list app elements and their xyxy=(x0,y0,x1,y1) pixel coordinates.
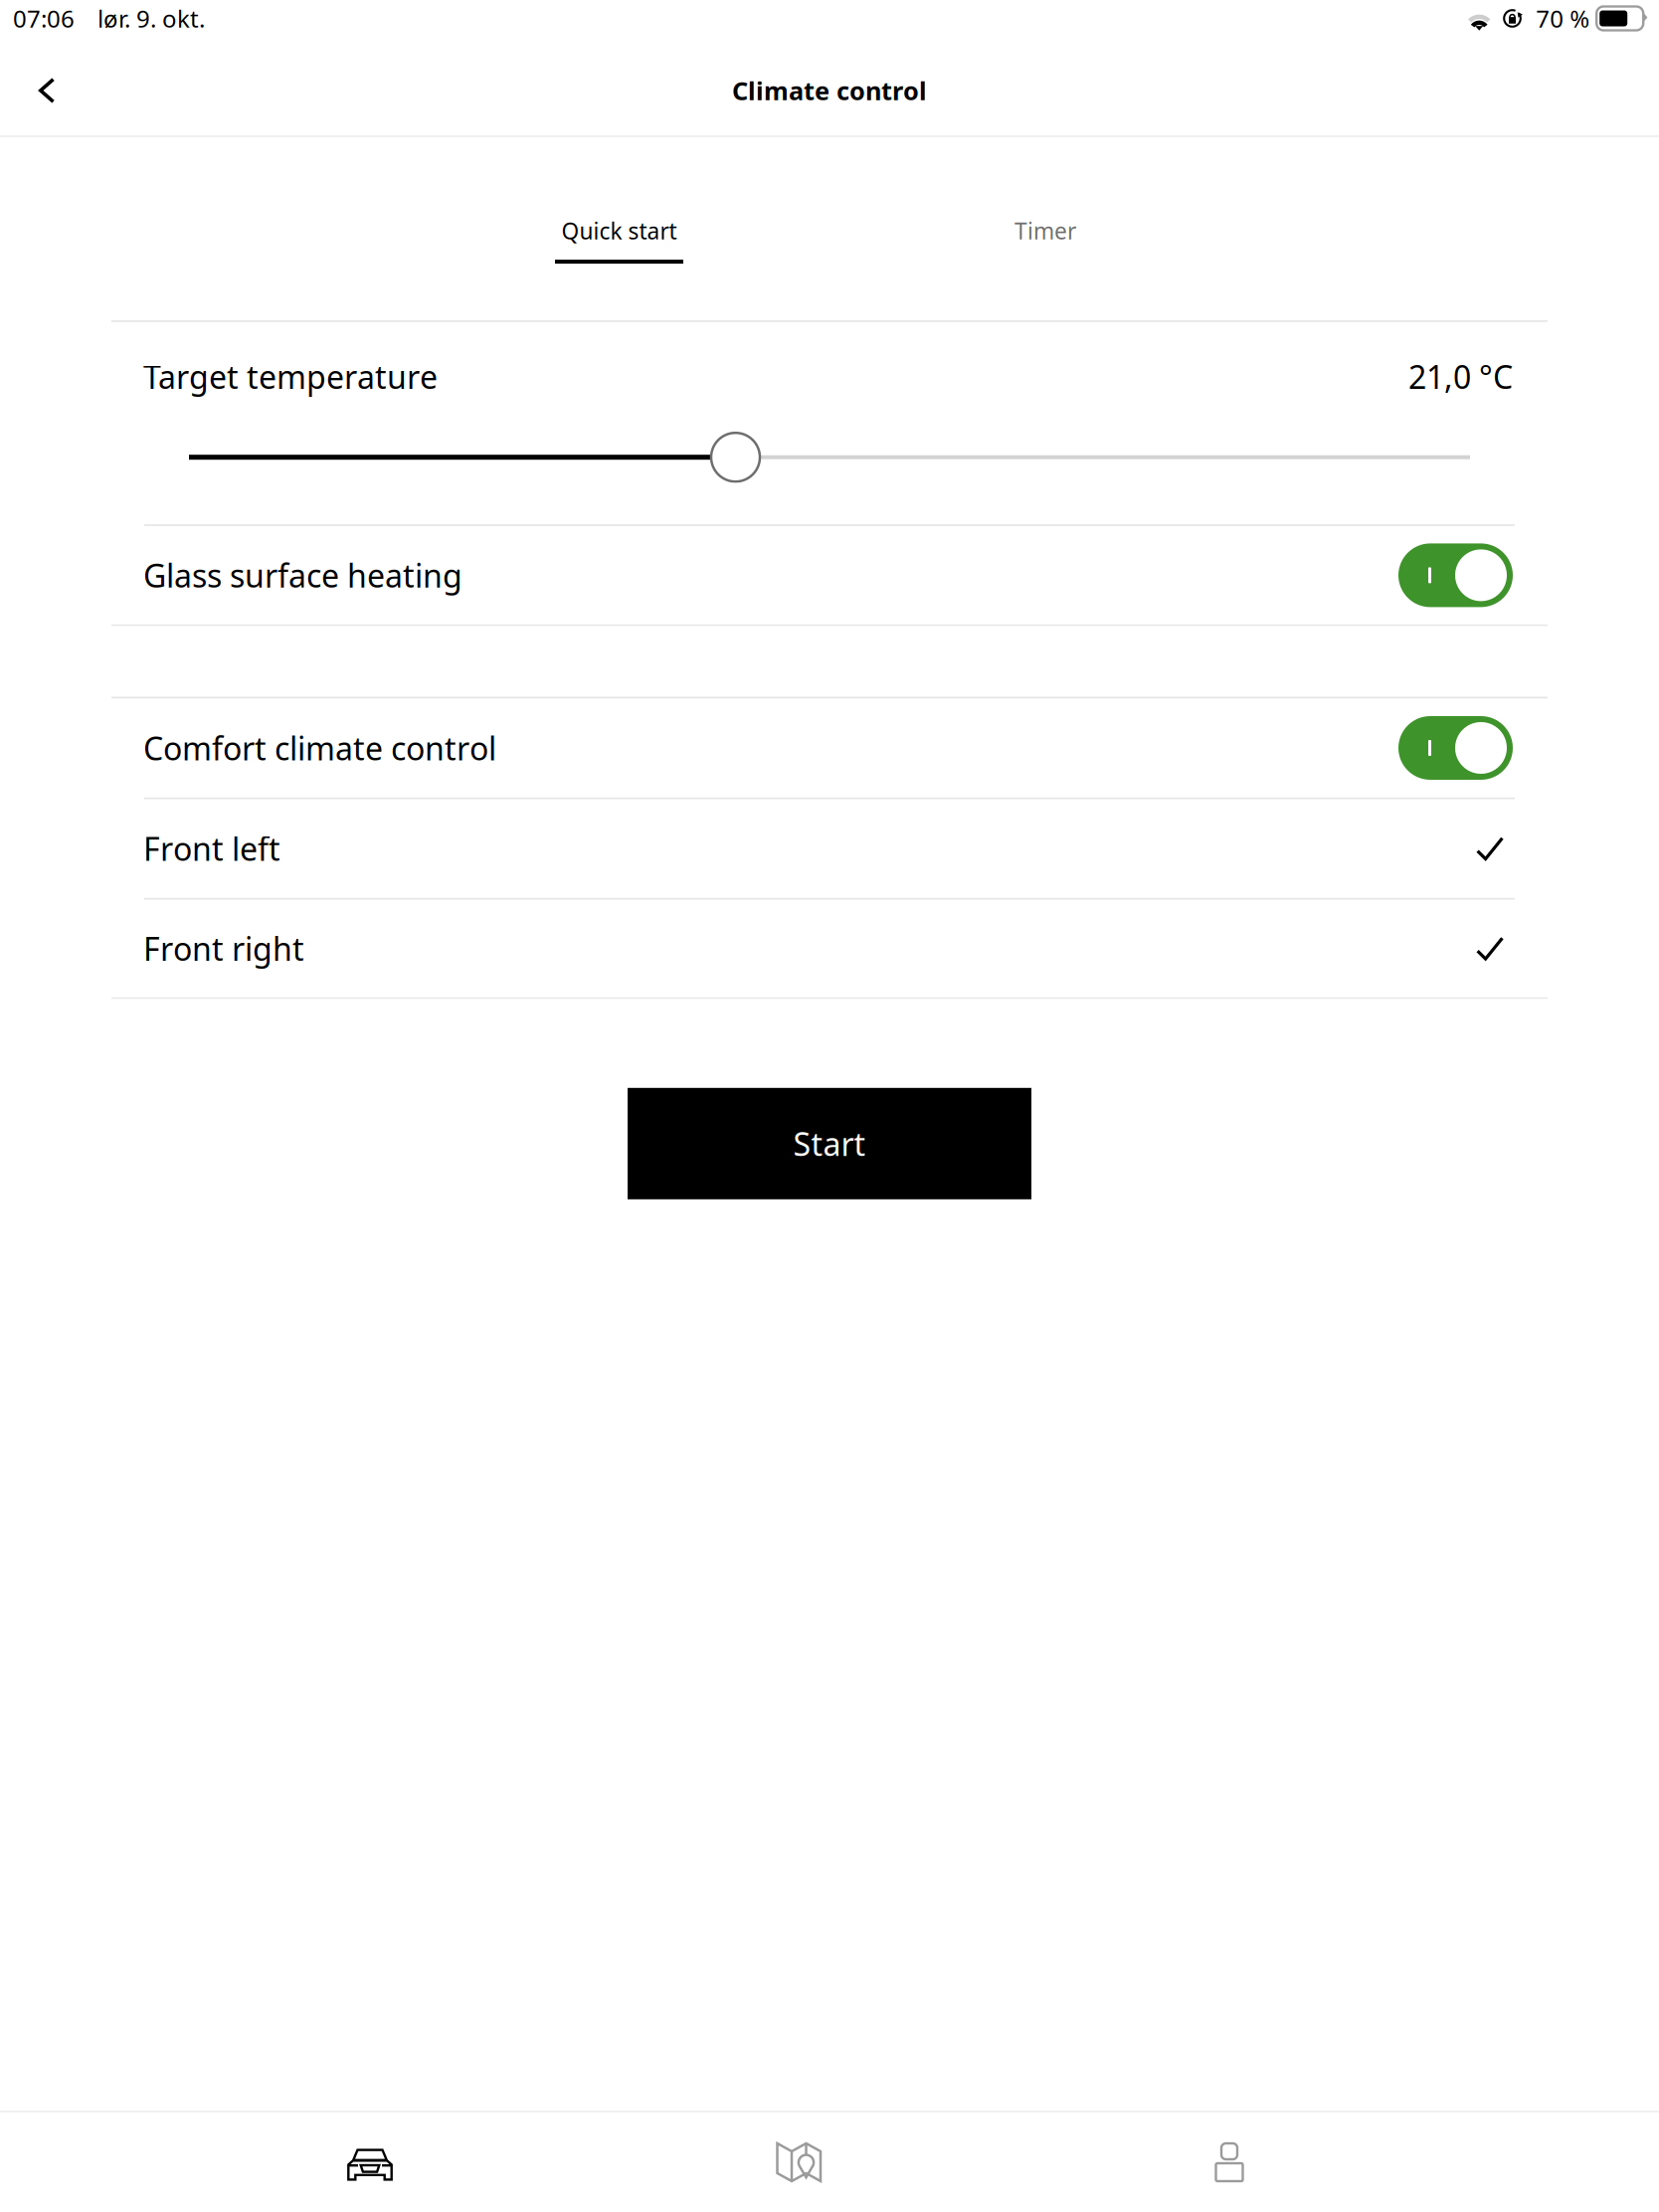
staticText: Comfort climate control xyxy=(143,727,496,769)
staticText: Target temperature xyxy=(143,356,438,398)
button[interactable]: Start xyxy=(628,1088,1031,1199)
button[interactable]: Glass surface heating xyxy=(0,526,1659,625)
staticText: 21,0 °C xyxy=(1408,356,1513,398)
staticText: 70 % xyxy=(1536,3,1590,34)
staticText: Timer xyxy=(1014,216,1076,246)
staticText: Front left xyxy=(143,827,280,870)
button[interactable]: Back xyxy=(0,49,93,132)
staticText: Glass surface heating xyxy=(143,554,462,596)
button[interactable]: Map xyxy=(584,2113,1014,2212)
staticText: Quick start xyxy=(561,216,677,246)
button[interactable]: Vehicle xyxy=(0,2113,584,2212)
staticText: Front right xyxy=(143,927,304,970)
button[interactable]: Front left xyxy=(0,799,1659,898)
button[interactable]: Quick start xyxy=(523,137,715,320)
button[interactable]: Profile xyxy=(1014,2113,1659,2212)
staticText: Start xyxy=(793,1123,866,1165)
button[interactable]: Timer xyxy=(983,137,1108,320)
button[interactable]: Front right xyxy=(0,900,1659,997)
staticText: 07:06 xyxy=(13,3,75,34)
button[interactable]: Comfort climate control xyxy=(0,698,1659,797)
staticText: lør. 9. okt. xyxy=(97,3,205,34)
staticText: Climate control xyxy=(732,74,927,107)
